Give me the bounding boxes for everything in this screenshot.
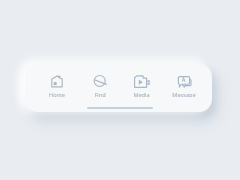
button[interactable]: Home — [36, 73, 78, 97]
staticText: Media — [133, 91, 150, 97]
button[interactable]: Message — [163, 73, 205, 97]
button[interactable]: Find — [79, 73, 121, 97]
staticText: Find — [94, 91, 106, 97]
button[interactable]: Media — [120, 73, 162, 97]
staticText: Home — [49, 91, 65, 97]
staticText: Message — [172, 91, 196, 97]
